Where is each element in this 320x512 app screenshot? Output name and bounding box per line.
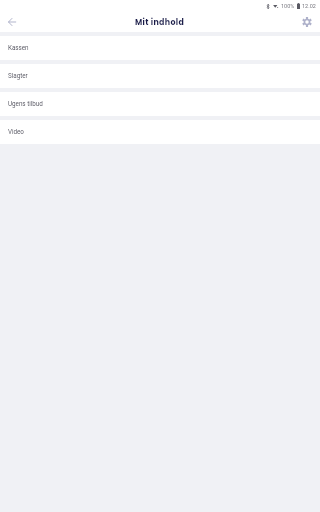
staticText: Video <box>8 128 24 135</box>
staticText: Slagter <box>8 72 28 79</box>
button[interactable]: Ugens tilbud <box>0 92 320 116</box>
staticText: Mit indhold <box>135 17 185 28</box>
button[interactable]: Back <box>0 12 24 32</box>
button[interactable]: Slagter <box>0 64 320 88</box>
button[interactable]: Kassen <box>0 36 320 60</box>
staticText: 100% <box>281 3 295 9</box>
staticText: 12.02 <box>302 3 316 9</box>
button[interactable]: Settings <box>294 12 320 32</box>
staticText: Kassen <box>8 44 29 51</box>
staticText: Ugens tilbud <box>8 100 43 107</box>
button[interactable]: Video <box>0 120 320 144</box>
